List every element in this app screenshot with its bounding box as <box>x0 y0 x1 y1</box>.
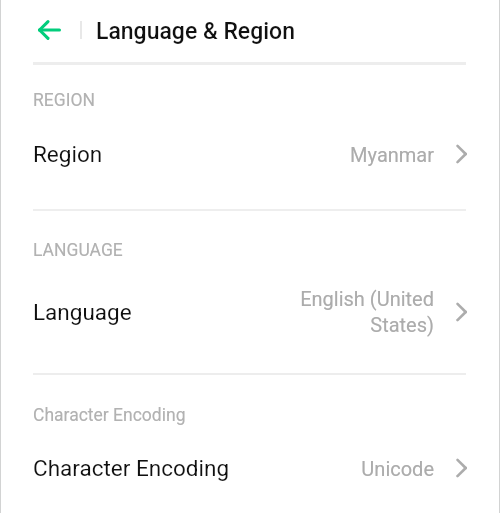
staticText: LANGUAGE <box>33 240 123 261</box>
staticText: Language <box>33 299 132 325</box>
staticText: REGION <box>33 90 95 111</box>
staticText: Character Encoding <box>33 455 230 481</box>
staticText: English (United States) <box>300 287 434 337</box>
staticText: Region <box>33 141 103 167</box>
staticText: Language & Region <box>96 18 295 45</box>
button[interactable]: Back <box>29 12 69 52</box>
staticText: Myanmar <box>350 143 434 166</box>
button[interactable]: Character Encoding <box>0 438 500 498</box>
button[interactable]: Region <box>0 124 500 184</box>
button[interactable]: Language <box>0 270 500 354</box>
staticText: Unicode <box>361 457 434 480</box>
staticText: Character Encoding <box>33 405 186 426</box>
